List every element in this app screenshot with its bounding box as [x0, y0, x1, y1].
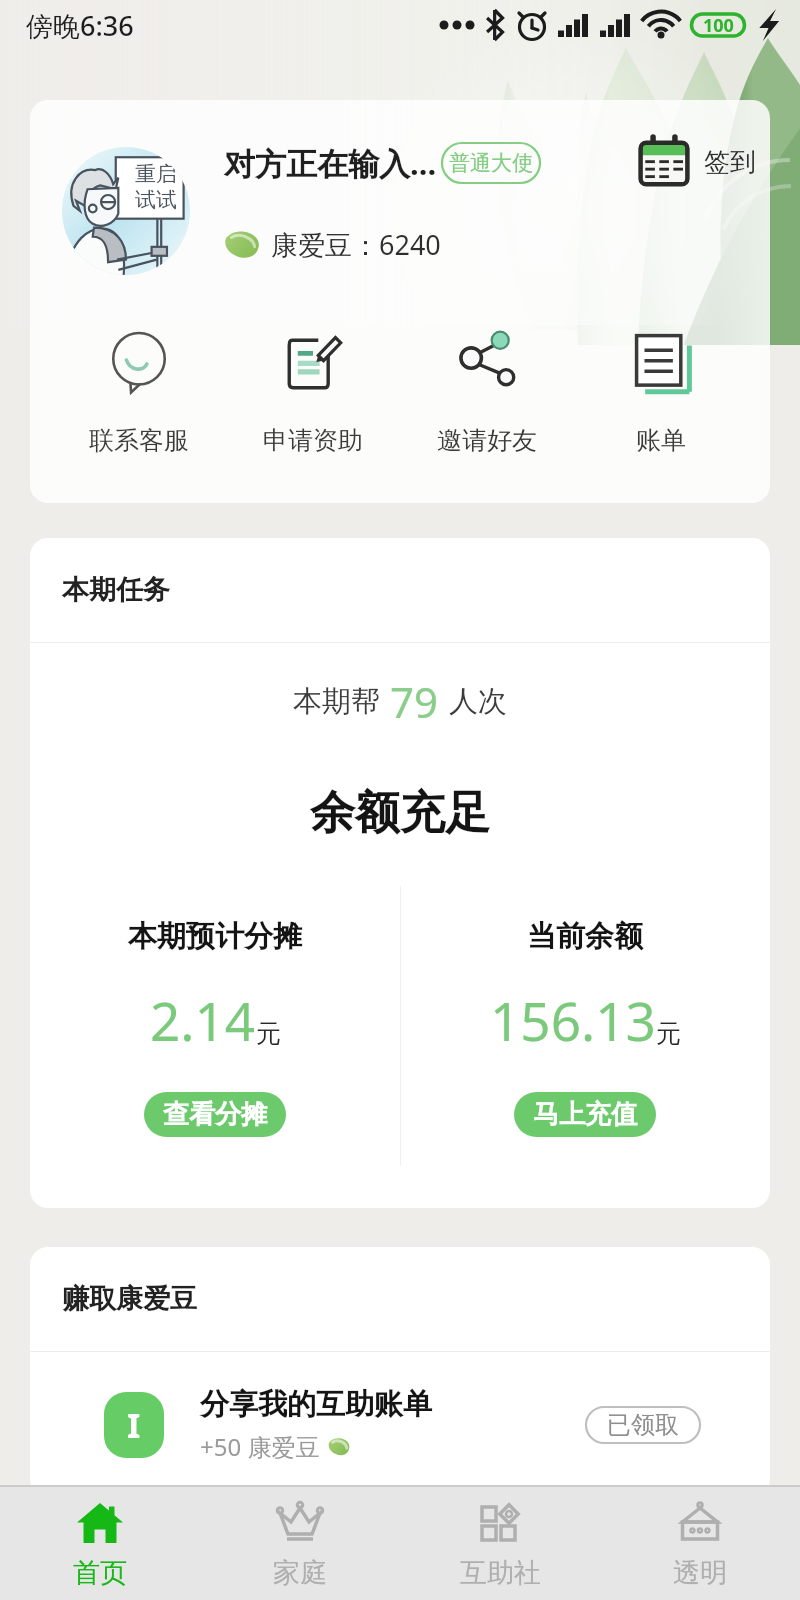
staticText: I — [127, 1402, 141, 1448]
staticText: 透明 — [673, 1556, 727, 1590]
button[interactable]: 首页 — [0, 1487, 200, 1600]
button[interactable]: 申请资助 — [226, 322, 400, 503]
staticText: 赚取康爱豆 — [62, 1282, 197, 1316]
button[interactable]: 查看分摊 — [144, 1092, 286, 1137]
staticText: 100 — [703, 13, 734, 38]
button[interactable]: 已领取 — [586, 1407, 700, 1443]
staticText: 人次 — [449, 683, 507, 720]
button[interactable]: I — [104, 1352, 700, 1497]
staticText: 本期预计分摊 — [128, 918, 302, 955]
staticText: 79 — [390, 673, 439, 730]
button[interactable]: 普通大使 — [442, 143, 540, 183]
staticText: 签到 — [704, 146, 756, 179]
button[interactable]: 马上充值 — [514, 1092, 656, 1137]
staticText: 普通大使 — [449, 150, 533, 176]
staticText: 查看分摊 — [163, 1098, 267, 1131]
staticText: +50 康爱豆 — [200, 1430, 320, 1463]
button[interactable]: 账单 — [574, 322, 748, 503]
staticText: 对方正在输入... — [224, 142, 437, 184]
staticText: 马上充值 — [533, 1098, 637, 1131]
staticText: 傍晚6:36 — [26, 7, 134, 44]
staticText: 本期帮 — [293, 683, 380, 720]
button[interactable]: 互助社 — [400, 1487, 600, 1600]
staticText: 互助社 — [460, 1556, 541, 1590]
staticText: 首页 — [73, 1556, 127, 1590]
staticText: 联系客服 — [89, 425, 189, 456]
staticText: 已领取 — [607, 1410, 679, 1440]
button[interactable]: 透明 — [600, 1487, 800, 1600]
button[interactable]: 家庭 — [200, 1487, 400, 1600]
staticText: 本期任务 — [62, 573, 170, 607]
staticText: 试试 — [135, 187, 177, 213]
staticText: 当前余额 — [527, 918, 643, 955]
staticText: 家庭 — [273, 1556, 327, 1590]
button[interactable]: 邀请好友 — [400, 322, 574, 503]
staticText: 邀请好友 — [437, 425, 537, 456]
staticText: 2.14 — [150, 984, 256, 1056]
staticText: 重启 — [135, 161, 177, 187]
staticText: 账单 — [636, 425, 686, 456]
staticText: 156.13 — [490, 984, 656, 1056]
staticText: 分享我的互助账单 — [200, 1386, 432, 1423]
staticText: 元 — [256, 1018, 281, 1049]
button[interactable]: 联系客服 — [52, 322, 226, 503]
staticText: 申请资助 — [263, 425, 363, 456]
button[interactable]: 签到 — [638, 136, 756, 188]
staticText: 康爱豆：6240 — [271, 226, 441, 263]
staticText: 元 — [656, 1018, 681, 1049]
staticText: 余额充足 — [310, 785, 490, 842]
